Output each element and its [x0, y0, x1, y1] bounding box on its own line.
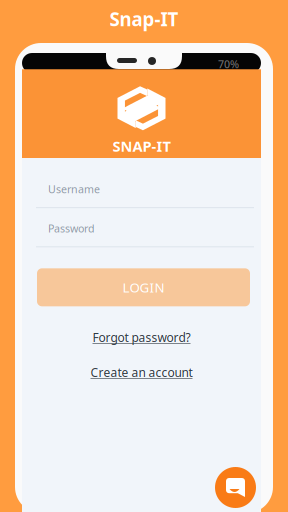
staticText: SNAP-IT	[112, 136, 170, 156]
staticText: Password	[48, 221, 95, 235]
staticText: Snap-IT	[109, 7, 178, 31]
button[interactable]: Create an account	[22, 365, 261, 379]
staticText: 70%	[218, 57, 239, 71]
button[interactable]: Open chat	[215, 467, 256, 508]
staticText: Username	[48, 182, 100, 196]
staticText: LOGIN	[122, 278, 164, 296]
staticText: Forgot password?	[92, 329, 190, 345]
button[interactable]: Forgot password?	[22, 330, 261, 344]
staticText: Create an account	[90, 364, 192, 380]
button[interactable]: LOGIN	[37, 268, 250, 306]
